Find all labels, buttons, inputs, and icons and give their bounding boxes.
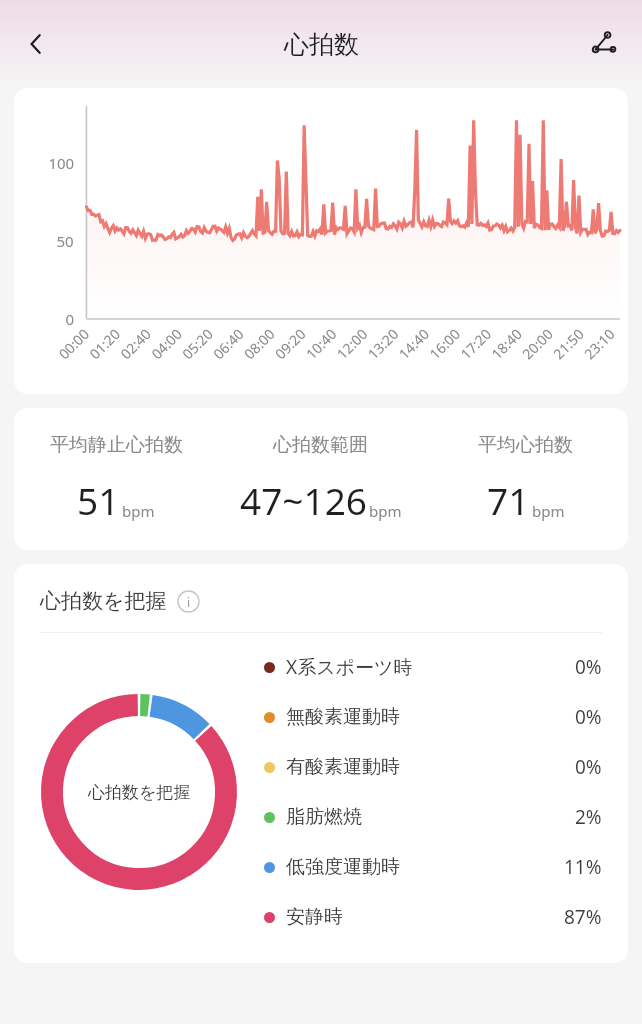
staticText: 0% [575,654,602,680]
button[interactable]: Share [576,16,632,72]
staticText: 脂肪燃焼 [286,805,362,829]
staticText: 低強度運動時 [286,855,400,879]
staticText: bpm [532,501,565,521]
staticText: 0% [575,704,602,730]
staticText: i [187,594,191,610]
staticText: 11% [564,854,602,880]
button[interactable]: 無酸素運動時 [264,704,602,730]
button[interactable]: X系スポーツ時 [264,654,602,680]
staticText: 87% [564,904,602,930]
button[interactable]: 心拍数範囲 [218,433,423,525]
staticText: 2% [575,804,602,830]
button[interactable]: 平均心拍数 [423,433,628,525]
button[interactable]: Back [8,16,64,72]
staticText: 47~126 [240,475,367,525]
staticText: 0% [575,754,602,780]
button[interactable]: 平均静止心拍数 [14,433,218,525]
staticText: 心拍数を把握 [88,782,191,803]
button[interactable] [14,88,628,394]
staticText: 有酸素運動時 [286,755,400,779]
button[interactable]: 脂肪燃焼 [264,804,602,830]
button[interactable]: 平均静止心拍数 [14,408,628,550]
staticText: 安静時 [286,905,343,929]
staticText: X系スポーツ時 [286,654,413,680]
staticText: 平均心拍数 [478,433,573,457]
button[interactable]: 有酸素運動時 [264,754,602,780]
button[interactable]: Info [177,590,200,613]
staticText: 心拍数を把握 [40,588,167,614]
staticText: 平均静止心拍数 [50,433,183,457]
button[interactable]: 心拍数を把握 [14,564,628,963]
button[interactable]: 低強度運動時 [264,854,602,880]
staticText: 心拍数 [284,29,359,60]
staticText: 無酸素運動時 [286,705,400,729]
staticText: bpm [369,501,402,521]
staticText: 71 [487,475,530,525]
staticText: bpm [122,501,155,521]
button[interactable]: 安静時 [264,904,602,930]
staticText: 心拍数範囲 [273,433,368,457]
staticText: 51 [77,475,120,525]
